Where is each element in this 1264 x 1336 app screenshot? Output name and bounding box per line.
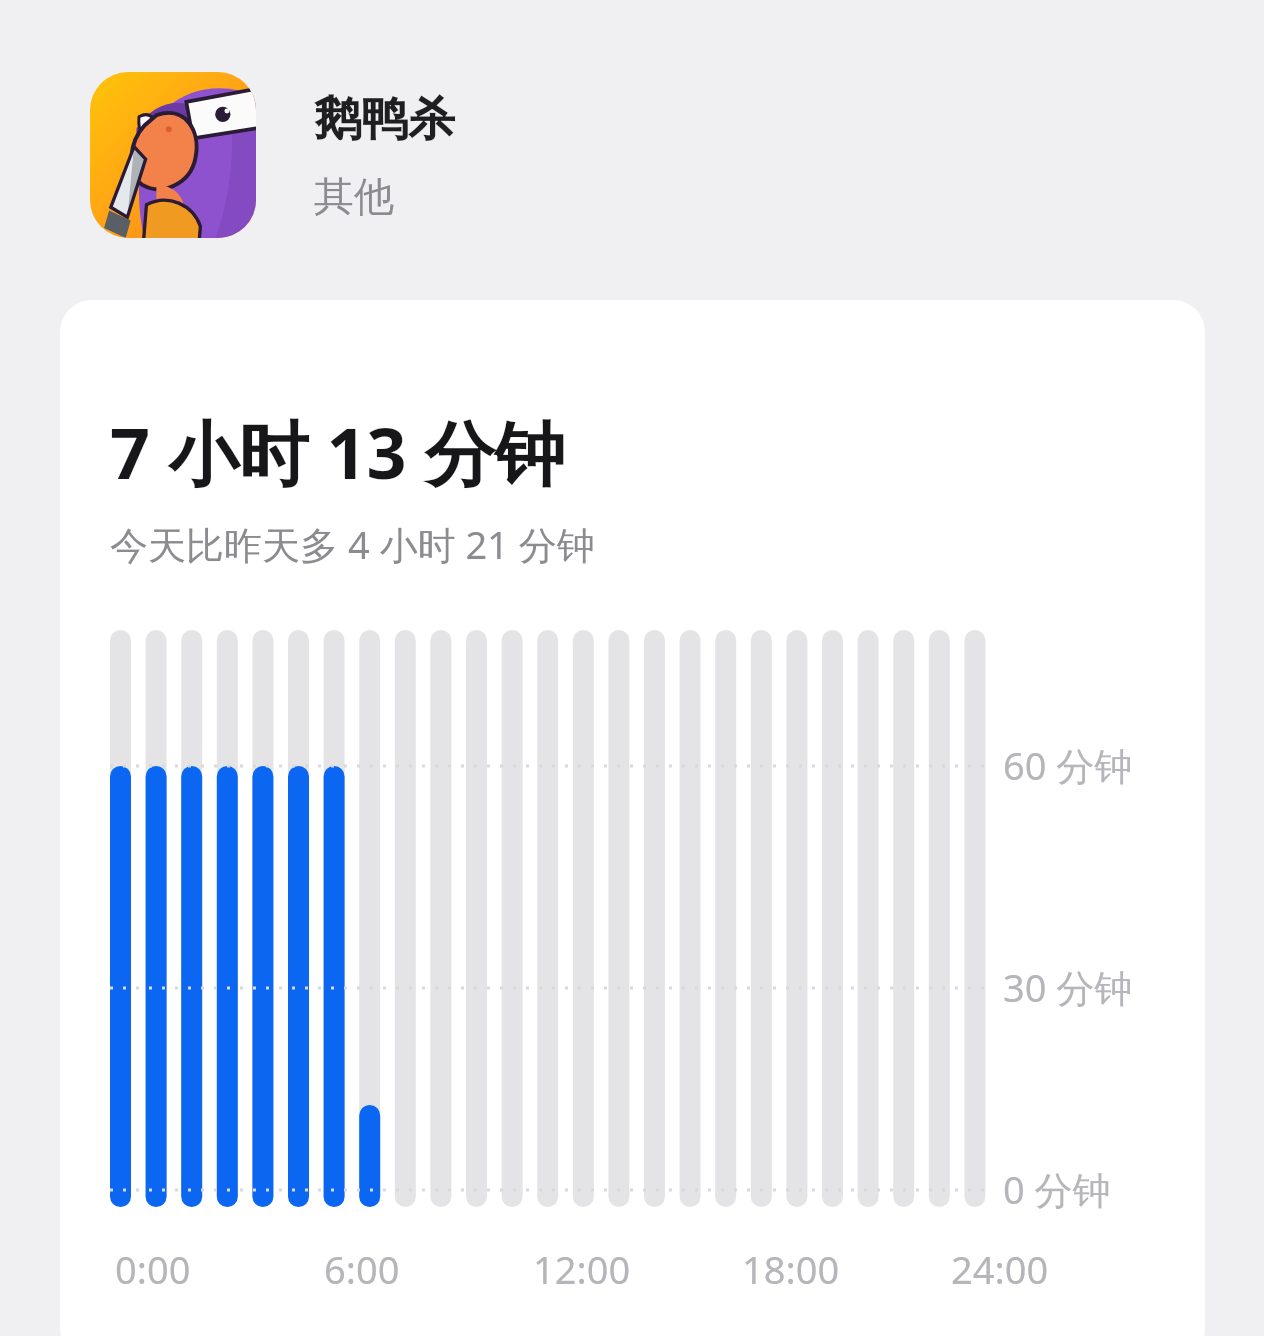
button[interactable] xyxy=(60,300,1205,1336)
staticText: 0 分钟 xyxy=(1003,1163,1111,1215)
staticText: 60 分钟 xyxy=(1003,739,1133,791)
staticText: 7 小时 13 分钟 xyxy=(110,404,565,500)
button[interactable]: 鹅鸭杀 app icon xyxy=(90,72,455,238)
other: 鹅鸭杀 app icon xyxy=(90,72,256,238)
staticText: 12:00 xyxy=(533,1243,631,1295)
staticText: 鹅鸭杀 xyxy=(314,90,455,149)
staticText: 其他 xyxy=(314,171,394,221)
staticText: 0:00 xyxy=(115,1243,191,1295)
staticText: 24:00 xyxy=(951,1243,1049,1295)
staticText: 今天比昨天多 4 小时 21 分钟 xyxy=(110,518,595,570)
staticText: 6:00 xyxy=(324,1243,400,1295)
staticText: 18:00 xyxy=(742,1243,840,1295)
staticText: 30 分钟 xyxy=(1003,961,1133,1013)
